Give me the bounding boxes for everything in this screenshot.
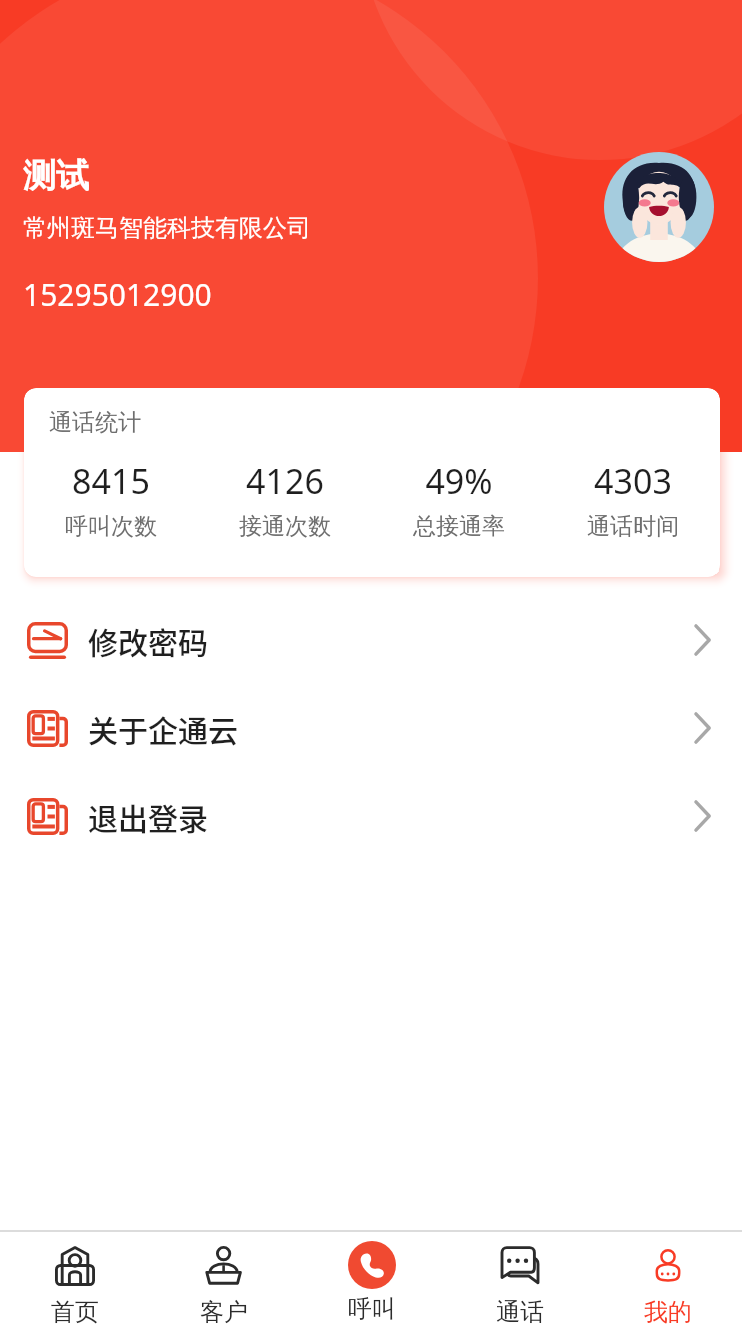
staticText: 修改密码 (88, 619, 208, 662)
staticText: 退出登录 (88, 795, 208, 838)
button[interactable]: 修改密码 (0, 596, 742, 684)
button[interactable]: 退出登录 (0, 772, 742, 860)
staticText: 客户 (200, 1297, 248, 1327)
staticText: 通话 (496, 1297, 544, 1327)
staticText: 通话统计 (49, 408, 141, 437)
staticText: 关于企通云 (88, 707, 238, 750)
staticText: 15295012900 (23, 274, 212, 315)
staticText: 8415 (72, 458, 150, 504)
other: Call (348, 1241, 396, 1289)
staticText: 呼叫次数 (65, 512, 157, 541)
staticText: 接通次数 (239, 512, 331, 541)
button[interactable]: 我的 (594, 1232, 742, 1328)
button[interactable]: 客户 (149, 1232, 298, 1328)
staticText: 测试 (23, 155, 89, 197)
staticText: 49% (425, 458, 493, 504)
staticText: 我的 (644, 1297, 692, 1327)
staticText: 4126 (246, 458, 324, 504)
button[interactable]: Call (298, 1232, 446, 1328)
staticText: 4303 (594, 458, 672, 504)
staticText: 通话时间 (587, 512, 679, 541)
staticText: 总接通率 (413, 512, 505, 541)
button[interactable]: 关于企通云 (0, 684, 742, 772)
staticText: 首页 (51, 1297, 99, 1327)
staticText: 呼叫 (348, 1294, 396, 1324)
staticText: 常州斑马智能科技有限公司 (23, 213, 311, 243)
button[interactable]: 首页 (0, 1232, 149, 1328)
button[interactable]: 通话 (446, 1232, 594, 1328)
